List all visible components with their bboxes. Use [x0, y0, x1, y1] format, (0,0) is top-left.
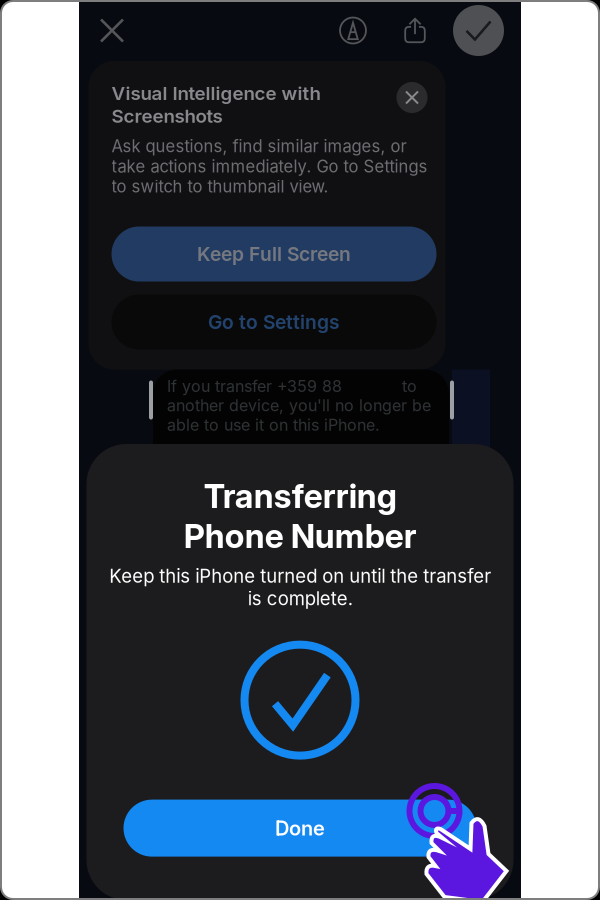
button[interactable]: Close: [89, 7, 135, 53]
staticText: Keep this iPhone turned on until the tra…: [109, 565, 491, 610]
staticText: Done: [275, 816, 325, 840]
button[interactable]: Go to Settings: [111, 294, 436, 349]
staticText: Transferring Phone Number: [183, 476, 416, 556]
button[interactable]: Done: [123, 800, 476, 857]
button[interactable]: Done: [453, 5, 504, 56]
staticText: Ask questions, find similar images, or t…: [111, 136, 427, 197]
staticText: Go to Settings: [208, 310, 340, 334]
staticText: If you transfer +359 88 to another devic…: [167, 376, 431, 435]
staticText: Keep Full Screen: [197, 242, 351, 266]
button[interactable]: Share: [393, 8, 437, 52]
button[interactable]: Dismiss: [396, 82, 427, 113]
button[interactable]: Keep Full Screen: [111, 226, 436, 281]
button[interactable]: Markup: [331, 8, 375, 52]
staticText: Visual Intelligence with Screenshots: [111, 82, 320, 127]
